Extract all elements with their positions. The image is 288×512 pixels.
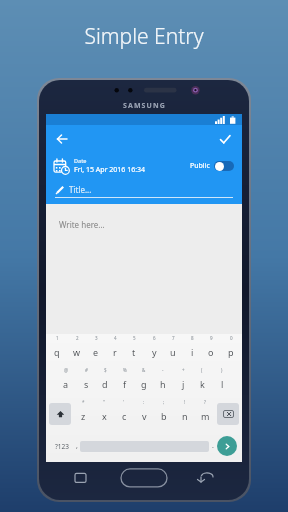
staticText: y bbox=[152, 346, 157, 358]
staticText: 4 bbox=[114, 335, 117, 341]
staticText: z bbox=[81, 410, 86, 422]
staticText: 2 bbox=[76, 335, 79, 341]
button[interactable]: ? bbox=[197, 398, 213, 430]
button[interactable]: 2 bbox=[69, 334, 85, 366]
staticText: b bbox=[161, 410, 167, 422]
button[interactable]: ! bbox=[177, 398, 193, 430]
staticText: c bbox=[122, 410, 127, 422]
button[interactable]: : bbox=[136, 398, 152, 430]
staticText: ( bbox=[201, 367, 203, 373]
button[interactable]: $ bbox=[97, 366, 113, 398]
staticText: w bbox=[73, 346, 81, 358]
staticText: % bbox=[123, 367, 127, 373]
staticText: - bbox=[162, 367, 164, 373]
staticText: x bbox=[102, 410, 107, 422]
staticText: : bbox=[143, 399, 145, 405]
button[interactable]: Public bbox=[190, 161, 234, 171]
staticText: h bbox=[160, 378, 166, 390]
button[interactable]: 3 bbox=[88, 334, 104, 366]
staticText: f bbox=[123, 378, 127, 390]
staticText: 8 bbox=[191, 335, 194, 341]
button[interactable]: & bbox=[136, 366, 152, 398]
button[interactable]: Date bbox=[54, 157, 190, 175]
staticText: , bbox=[76, 441, 78, 451]
button[interactable]: # bbox=[78, 366, 94, 398]
button[interactable]: ?123 bbox=[50, 430, 74, 462]
staticText: 9 bbox=[210, 335, 213, 341]
button[interactable]: - bbox=[155, 366, 171, 398]
staticText: i bbox=[191, 346, 194, 358]
button[interactable]: @ bbox=[58, 366, 74, 398]
button[interactable]: 4 bbox=[107, 334, 123, 366]
staticText: t bbox=[132, 346, 136, 358]
staticText: d bbox=[102, 378, 108, 390]
staticText: ! bbox=[184, 399, 186, 405]
staticText: q bbox=[54, 346, 60, 358]
button[interactable]: Shift bbox=[49, 403, 71, 425]
button[interactable]: 9 bbox=[203, 334, 219, 366]
button[interactable]: ( bbox=[194, 366, 210, 398]
staticText: s bbox=[84, 378, 89, 390]
staticText: u bbox=[170, 346, 176, 358]
staticText: e bbox=[93, 346, 99, 358]
staticText: 7 bbox=[172, 335, 175, 341]
button[interactable]: ) bbox=[214, 366, 230, 398]
button[interactable]: 5 bbox=[126, 334, 142, 366]
staticText: . bbox=[212, 441, 214, 451]
button[interactable]: ' bbox=[116, 398, 132, 430]
staticText: $ bbox=[104, 367, 107, 373]
button[interactable]: * bbox=[75, 398, 91, 430]
button[interactable]: Enter bbox=[217, 436, 237, 456]
staticText: 6 bbox=[153, 335, 156, 341]
button[interactable]: Back bbox=[51, 128, 73, 150]
staticText: o bbox=[208, 346, 214, 358]
button[interactable]: ; bbox=[156, 398, 172, 430]
staticText: p bbox=[228, 346, 234, 358]
staticText: ; bbox=[163, 399, 165, 405]
button[interactable]: 7 bbox=[165, 334, 181, 366]
button[interactable]: 0 bbox=[223, 334, 239, 366]
staticText: Title... bbox=[69, 184, 92, 195]
staticText: SAMSUNG bbox=[123, 101, 166, 111]
staticText: " bbox=[103, 399, 105, 405]
staticText: 5 bbox=[133, 335, 136, 341]
staticText: ? bbox=[204, 399, 206, 405]
staticText: r bbox=[113, 346, 117, 358]
button[interactable]: Title... bbox=[55, 184, 233, 195]
staticText: @ bbox=[64, 367, 69, 373]
staticText: Public bbox=[190, 161, 210, 171]
staticText: m bbox=[201, 410, 210, 422]
staticText: ?123 bbox=[55, 442, 69, 451]
staticText: Date bbox=[74, 157, 87, 164]
button[interactable]: Save bbox=[214, 128, 236, 150]
staticText: l bbox=[221, 378, 224, 390]
staticText: a bbox=[63, 378, 69, 390]
staticText: Write here... bbox=[59, 219, 105, 230]
button[interactable]: 6 bbox=[146, 334, 162, 366]
staticText: v bbox=[142, 410, 147, 422]
button[interactable]: Backspace bbox=[217, 403, 239, 425]
staticText: # bbox=[85, 367, 88, 373]
staticText: 1 bbox=[56, 335, 59, 341]
staticText: Fri, 15 Apr 2016 16:34 bbox=[74, 165, 146, 175]
staticText: 0 bbox=[230, 335, 233, 341]
staticText: Simple Entry bbox=[0, 22, 288, 51]
staticText: & bbox=[142, 367, 146, 373]
staticText: j bbox=[182, 378, 185, 390]
staticText: k bbox=[200, 378, 205, 390]
staticText: n bbox=[182, 410, 188, 422]
staticText: + bbox=[182, 367, 185, 373]
staticText: ) bbox=[221, 367, 223, 373]
staticText: * bbox=[82, 399, 85, 405]
button[interactable]: 1 bbox=[49, 334, 65, 366]
button[interactable]: % bbox=[117, 366, 133, 398]
button[interactable]: + bbox=[175, 366, 191, 398]
staticText: 3 bbox=[95, 335, 98, 341]
button[interactable]: " bbox=[96, 398, 112, 430]
staticText: ' bbox=[123, 399, 125, 405]
staticText: g bbox=[141, 378, 147, 390]
button[interactable]: 8 bbox=[184, 334, 200, 366]
